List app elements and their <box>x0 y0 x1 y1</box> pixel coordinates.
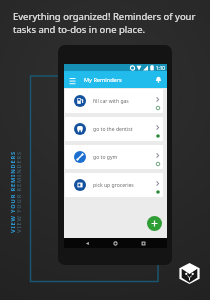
staticText: go to gym <box>93 154 118 161</box>
button[interactable]: Home <box>111 239 120 248</box>
staticText: VIEW YOUR REMINDERS <box>15 151 23 233</box>
button[interactable]: fill car with gas <box>65 89 163 113</box>
button[interactable]: Back <box>83 239 92 248</box>
button[interactable]: Recents <box>139 239 148 248</box>
button[interactable]: Menu <box>67 74 78 85</box>
button[interactable]: Add reminder <box>147 216 162 231</box>
staticText: fill car with gas <box>93 98 129 105</box>
staticText: 1:10 <box>156 65 165 71</box>
button[interactable]: go to gym <box>65 145 163 169</box>
staticText: Everything organized! Reminders of your … <box>13 10 196 36</box>
staticText: pick up groceries <box>93 182 134 189</box>
staticText: My Reminders <box>84 76 122 84</box>
staticText: VIEW YOUR REMINDERS <box>9 151 17 233</box>
button[interactable]: pick up groceries <box>65 173 163 197</box>
button[interactable]: go to the dentist <box>65 117 163 141</box>
staticText: go to the dentist <box>93 126 133 133</box>
button[interactable]: Notifications <box>153 74 164 85</box>
